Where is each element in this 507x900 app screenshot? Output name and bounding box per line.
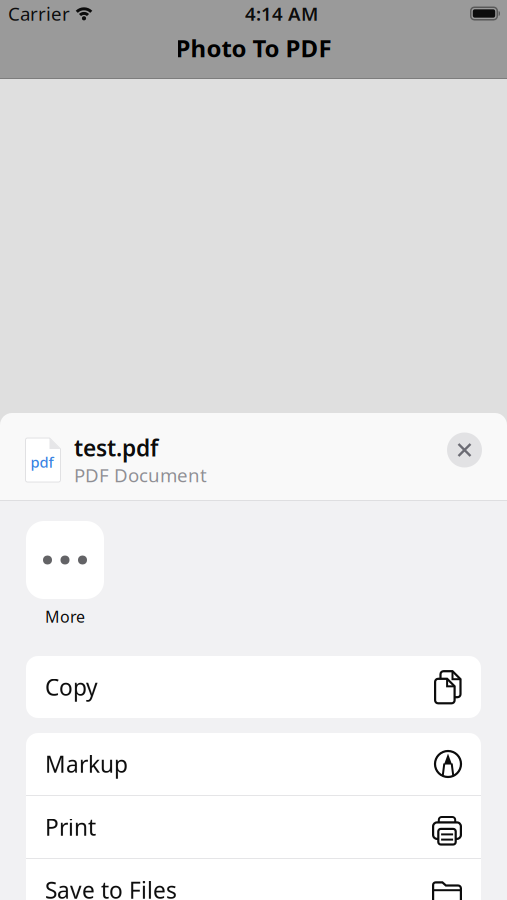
- staticText: PDF Document: [74, 463, 207, 487]
- button[interactable]: Save to Files: [26, 859, 481, 900]
- staticText: Print: [45, 812, 96, 842]
- staticText: Copy: [45, 672, 98, 702]
- staticText: test.pdf: [74, 433, 158, 463]
- staticText: 4:14 AM: [245, 1, 318, 26]
- staticText: Carrier: [8, 1, 70, 26]
- button[interactable]: More: [26, 521, 104, 622]
- button[interactable]: Copy: [26, 656, 481, 718]
- staticText: pdf: [30, 452, 53, 472]
- button[interactable]: Print: [26, 796, 481, 858]
- staticText: Markup: [45, 749, 128, 779]
- staticText: Save to Files: [45, 875, 177, 900]
- staticText: More: [45, 606, 85, 627]
- button[interactable]: Markup: [26, 733, 481, 795]
- staticText: Photo To PDF: [175, 32, 331, 64]
- button[interactable]: Close: [447, 432, 482, 467]
